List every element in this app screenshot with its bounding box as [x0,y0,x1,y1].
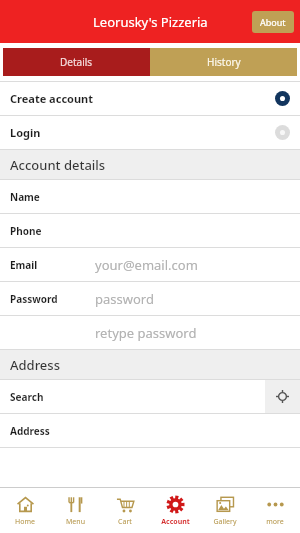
button[interactable]: Create account [0,82,300,115]
staticText: Account [161,517,190,527]
button[interactable]: Details [3,48,150,76]
staticText: Search [10,390,44,404]
button[interactable]: About [252,11,294,33]
staticText: more [266,517,284,527]
staticText: Details [60,55,93,69]
staticText: Home [15,517,35,527]
button[interactable]: Search [0,380,265,413]
staticText: Password [10,292,58,306]
button[interactable]: Address [0,414,300,447]
staticText: Gallery [213,517,237,527]
staticText: Name [10,190,40,204]
staticText: Leorusky's Pizzeria [93,13,208,31]
staticText: Address [10,424,50,438]
button[interactable]: Name [0,180,300,213]
button[interactable]: Menu [50,488,100,533]
staticText: Cart [118,517,132,527]
button[interactable]: Use current location [265,380,300,413]
staticText: Address [10,356,60,374]
button[interactable]: retype password [0,316,300,349]
staticText: Account details [10,156,106,174]
button[interactable]: Home [0,488,50,533]
staticText: History [207,55,241,69]
button[interactable]: Cart [100,488,150,533]
button[interactable]: more [250,488,300,533]
staticText: Menu [66,517,85,527]
button[interactable]: Account [150,488,200,533]
staticText: retype password [95,324,197,342]
button[interactable]: Password [0,282,300,315]
staticText: Phone [10,224,42,238]
button[interactable]: History [150,48,297,76]
staticText: Login [10,125,275,140]
button[interactable]: Phone [0,214,300,247]
button[interactable]: Email [0,248,300,281]
button[interactable]: Login [0,116,300,149]
staticText: Create account [10,91,275,106]
staticText: Email [10,258,38,272]
staticText: your@email.com [95,256,198,274]
button[interactable]: Gallery [200,488,250,533]
staticText: About [260,16,286,28]
staticText: password [95,290,154,308]
